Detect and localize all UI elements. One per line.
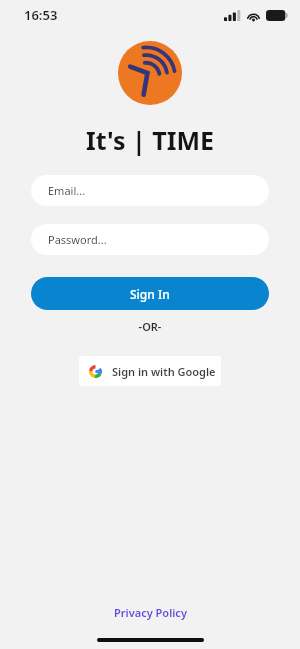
other: It's Time logo (118, 41, 182, 105)
staticText: -OR- (0, 319, 300, 334)
button[interactable]: Sign In (31, 277, 269, 310)
button[interactable]: Password... (31, 224, 269, 255)
staticText: 16:53 (24, 6, 58, 24)
button[interactable]: Privacy Policy (104, 602, 197, 623)
button[interactable]: Sign in with Google (79, 356, 221, 386)
staticText: It's | TIME (0, 123, 300, 157)
staticText: Sign in with Google (112, 364, 216, 379)
staticText: Password... (48, 232, 107, 247)
staticText: Email... (48, 183, 86, 198)
button[interactable]: Email... (31, 175, 269, 206)
staticText: Sign In (130, 286, 170, 302)
